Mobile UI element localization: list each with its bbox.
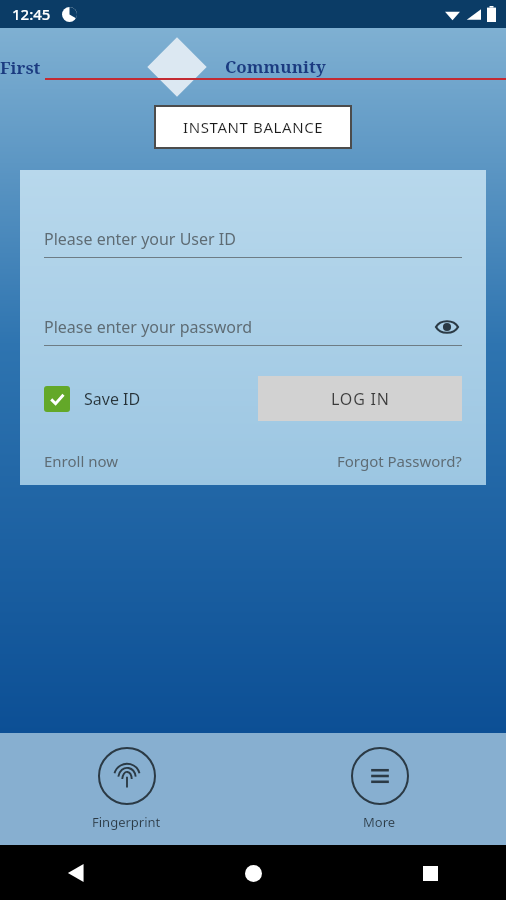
button[interactable]: LOG IN	[258, 376, 462, 421]
button[interactable]: Fingerprint login	[0, 739, 253, 839]
staticText: Forgot Password?	[337, 451, 462, 471]
staticText: Enroll now	[44, 451, 119, 471]
button[interactable]: More options	[253, 739, 506, 839]
staticText: Save ID	[84, 388, 141, 410]
button[interactable]: Save ID	[44, 386, 149, 412]
staticText: First	[0, 56, 45, 79]
button[interactable]: Please enter your User ID	[44, 214, 462, 258]
button[interactable]: Recent apps	[410, 853, 450, 893]
staticText: Community	[225, 55, 326, 78]
button[interactable]: Home	[233, 853, 273, 893]
button[interactable]: Back	[56, 853, 96, 893]
staticText: Please enter your password	[44, 316, 253, 338]
staticText: LOG IN	[331, 388, 390, 410]
button[interactable]: INSTANT BALANCE	[155, 106, 351, 148]
staticText: Fingerprint	[92, 813, 161, 831]
button[interactable]: Forgot Password?	[337, 451, 462, 471]
button[interactable]: Show password	[432, 312, 462, 342]
button[interactable]: Enroll now	[44, 451, 119, 471]
staticText: INSTANT BALANCE	[183, 117, 324, 137]
staticText: Please enter your User ID	[44, 228, 236, 250]
staticText: More	[363, 813, 396, 831]
button[interactable]: Please enter your password	[44, 302, 462, 346]
staticText: 12:45	[12, 4, 51, 24]
